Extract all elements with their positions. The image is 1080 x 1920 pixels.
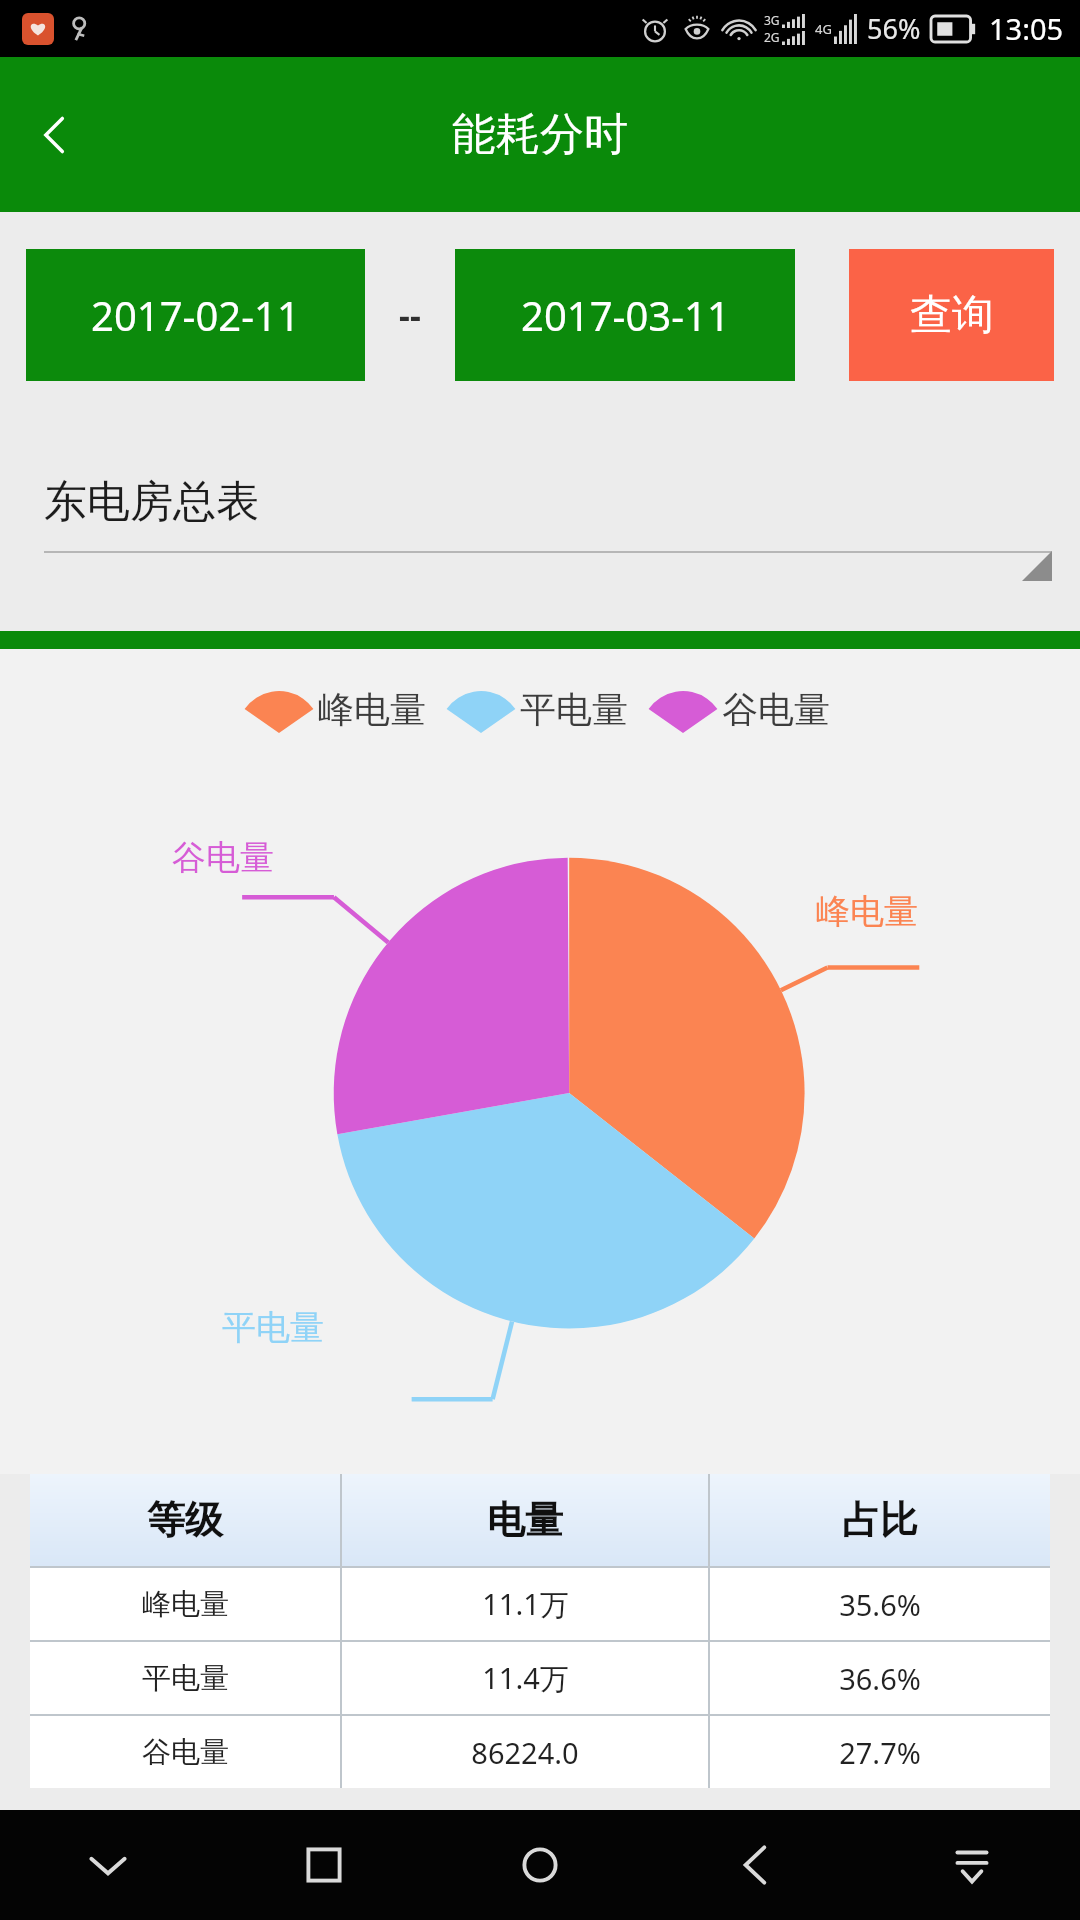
staticText: -- [399, 292, 421, 338]
staticText: 东电房总表 [44, 475, 259, 529]
button[interactable]: Back [0, 57, 110, 212]
staticText: 4G [815, 20, 832, 38]
staticText: 查询 [910, 289, 994, 342]
staticText: 11.1万 [482, 1584, 569, 1624]
button[interactable]: Recents [216, 1810, 432, 1920]
staticText: 谷电量 [722, 687, 830, 732]
staticText: 平电量 [142, 1660, 229, 1697]
staticText: 谷电量 [172, 836, 274, 879]
button[interactable]: 2017-03-11 [455, 249, 795, 381]
button[interactable]: Home [432, 1810, 648, 1920]
staticText: 2G [764, 29, 780, 45]
staticText: 13:05 [989, 9, 1064, 48]
staticText: 平电量 [222, 1306, 324, 1349]
staticText: 86224.0 [471, 1733, 579, 1772]
staticText: 2017-03-11 [521, 288, 730, 342]
staticText: 能耗分时 [452, 107, 628, 162]
staticText: 36.6% [839, 1659, 921, 1698]
staticText: 电量 [487, 1496, 563, 1544]
button[interactable]: Back [648, 1810, 864, 1920]
staticText: 35.6% [839, 1585, 921, 1624]
button[interactable]: 查询 [849, 249, 1054, 381]
button[interactable]: 2017-02-11 [26, 249, 365, 381]
button[interactable]: 峰电量 [30, 1568, 1050, 1640]
button[interactable]: 平电量 [30, 1642, 1050, 1714]
staticText: 谷电量 [142, 1734, 229, 1771]
staticText: 2017-02-11 [91, 288, 300, 342]
staticText: 27.7% [839, 1733, 921, 1772]
staticText: 56% [867, 10, 921, 47]
staticText: 占比 [842, 1496, 918, 1544]
staticText: 峰电量 [142, 1586, 229, 1623]
staticText: 平电量 [520, 687, 628, 732]
button[interactable]: Collapse [0, 1810, 216, 1920]
staticText: 3G [764, 12, 780, 28]
staticText: 等级 [147, 1496, 223, 1544]
button[interactable]: 东电房总表 [0, 417, 1080, 631]
staticText: 11.4万 [482, 1658, 569, 1698]
button[interactable]: Hide keyboard [864, 1810, 1080, 1920]
staticText: 峰电量 [816, 890, 918, 933]
staticText: 峰电量 [318, 687, 426, 732]
button[interactable]: 谷电量 [30, 1716, 1050, 1788]
